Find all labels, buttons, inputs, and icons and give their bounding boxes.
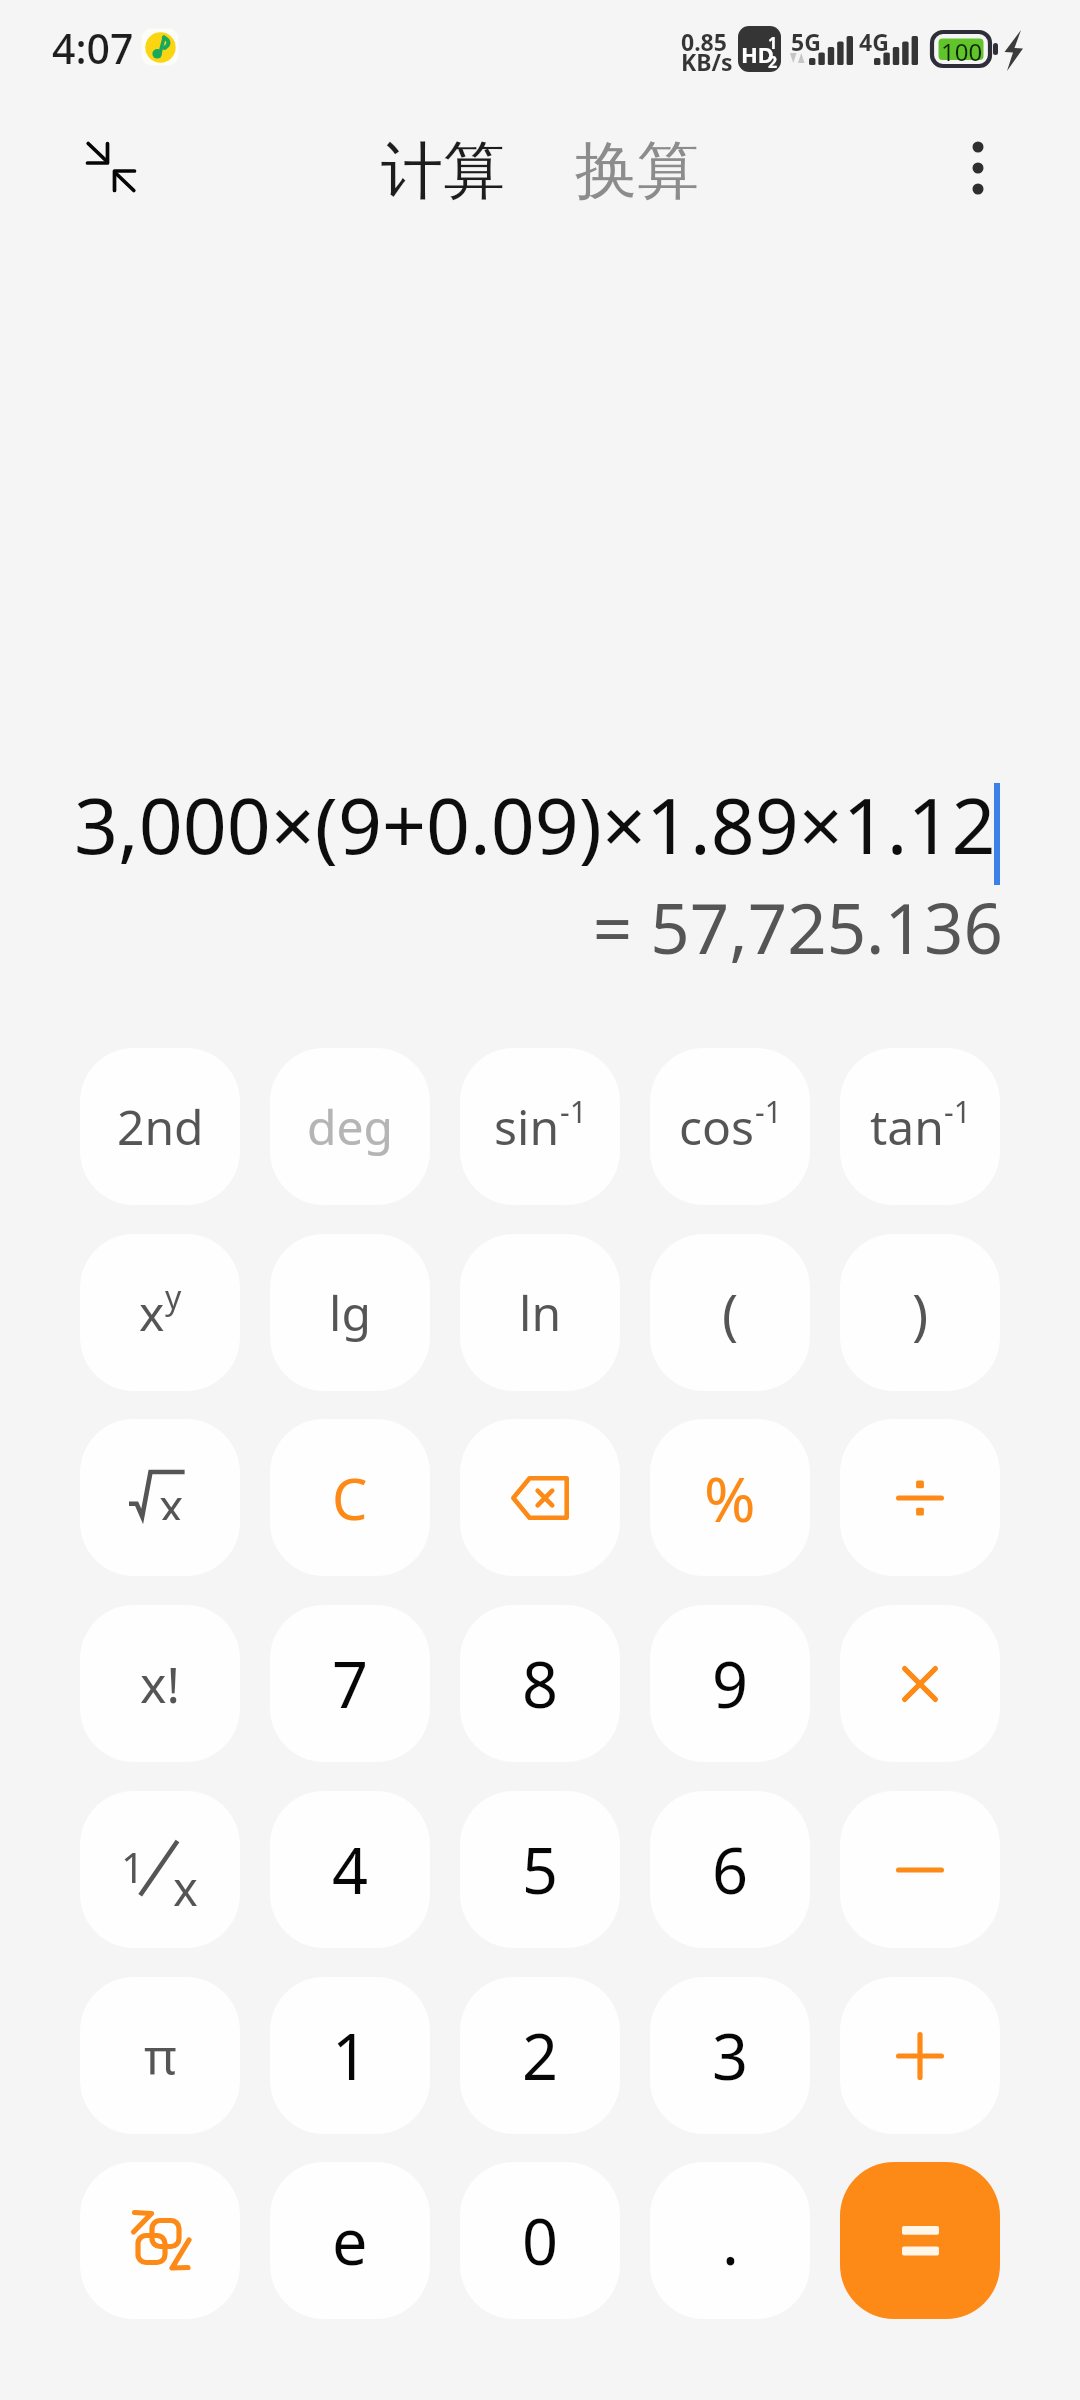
button[interactable]: x to the power y bbox=[80, 1234, 240, 1391]
button[interactable]: e bbox=[270, 2162, 430, 2319]
button[interactable]: 0 bbox=[460, 2162, 620, 2319]
staticText: C bbox=[332, 1460, 368, 1536]
staticText: 0 bbox=[522, 2198, 559, 2284]
button[interactable]: 3 bbox=[650, 1977, 810, 2134]
button[interactable]: 2nd bbox=[80, 1048, 240, 1205]
staticText: 100 bbox=[941, 35, 983, 68]
staticText: 计算 bbox=[381, 132, 505, 210]
staticText: 4:07 bbox=[52, 20, 134, 76]
button[interactable]: π bbox=[80, 1977, 240, 2134]
staticText: 换算 bbox=[575, 132, 699, 210]
staticText: 4G bbox=[859, 26, 889, 57]
button[interactable]: lg bbox=[270, 1234, 430, 1391]
staticText: 3,000×(9+0.09)×1.89×1.12 bbox=[74, 772, 996, 877]
staticText: . bbox=[722, 2198, 739, 2284]
button[interactable]: 计算 bbox=[371, 114, 515, 228]
button[interactable]: Plus bbox=[840, 1977, 1000, 2134]
staticText: 9 bbox=[712, 1641, 749, 1727]
staticText: sin bbox=[494, 1094, 560, 1159]
staticText: ( bbox=[722, 1276, 739, 1350]
staticText: x bbox=[139, 1280, 165, 1345]
button[interactable]: Equals bbox=[840, 2162, 1000, 2319]
staticText: 7 bbox=[332, 1641, 369, 1727]
staticText: 1 bbox=[332, 2013, 369, 2099]
staticText: -1 bbox=[560, 1091, 587, 1132]
button[interactable]: 6 bbox=[650, 1791, 810, 1948]
button[interactable]: Divide bbox=[840, 1419, 1000, 1576]
button[interactable]: 4 bbox=[270, 1791, 430, 1948]
staticText: lg bbox=[329, 1280, 371, 1345]
staticText: = 57,725.136 bbox=[0, 880, 1003, 974]
staticText: 2nd bbox=[117, 1094, 204, 1159]
button[interactable]: arc cosine bbox=[650, 1048, 810, 1205]
staticText: ln bbox=[519, 1280, 562, 1345]
button[interactable]: Reciprocal bbox=[80, 1791, 240, 1948]
button[interactable]: deg bbox=[270, 1048, 430, 1205]
staticText: 6 bbox=[712, 1827, 749, 1913]
button[interactable]: 7 bbox=[270, 1605, 430, 1762]
staticText: KB/s bbox=[681, 46, 733, 77]
staticText: cos bbox=[679, 1094, 755, 1159]
staticText: 5 bbox=[522, 1827, 559, 1913]
button[interactable]: 换算 bbox=[565, 114, 709, 228]
staticText: HD bbox=[741, 39, 774, 69]
staticText: tan bbox=[870, 1094, 944, 1159]
staticText: 8 bbox=[522, 1641, 559, 1727]
button[interactable]: 9 bbox=[650, 1605, 810, 1762]
button[interactable]: x! bbox=[80, 1605, 240, 1762]
staticText: 2 bbox=[768, 51, 778, 73]
staticText: % bbox=[704, 1456, 756, 1540]
button[interactable]: . bbox=[650, 2162, 810, 2319]
button[interactable]: 1 bbox=[270, 1977, 430, 2134]
button[interactable]: C bbox=[270, 1419, 430, 1576]
button[interactable]: % bbox=[650, 1419, 810, 1576]
button[interactable]: ) bbox=[840, 1234, 1000, 1391]
button[interactable]: 2 bbox=[460, 1977, 620, 2134]
button[interactable]: Backspace bbox=[460, 1419, 620, 1576]
button[interactable]: Switch keypad bbox=[80, 2162, 240, 2319]
staticText: deg bbox=[307, 1094, 394, 1159]
staticText: -1 bbox=[944, 1091, 971, 1132]
button[interactable]: arc tangent bbox=[840, 1048, 1000, 1205]
button[interactable]: ln bbox=[460, 1234, 620, 1391]
staticText: x! bbox=[140, 1650, 180, 1718]
button[interactable]: Collapse bbox=[68, 124, 156, 212]
button[interactable]: More options bbox=[936, 126, 1020, 210]
button[interactable]: Minus bbox=[840, 1791, 1000, 1948]
staticText: 5G bbox=[791, 26, 821, 57]
staticText: 2 bbox=[522, 2013, 559, 2099]
button[interactable]: Multiply bbox=[840, 1605, 1000, 1762]
staticText: y bbox=[165, 1275, 182, 1319]
button[interactable]: ( bbox=[650, 1234, 810, 1391]
staticText: 3 bbox=[712, 2013, 749, 2099]
staticText: ) bbox=[912, 1276, 929, 1350]
button[interactable]: 5 bbox=[460, 1791, 620, 1948]
staticText: -1 bbox=[755, 1091, 782, 1132]
staticText: e bbox=[332, 2198, 368, 2284]
button[interactable]: Square root bbox=[80, 1419, 240, 1576]
staticText: 1 bbox=[768, 32, 778, 54]
staticText: x bbox=[173, 1856, 198, 1914]
staticText: x bbox=[159, 1474, 184, 1520]
button[interactable]: arc sine bbox=[460, 1048, 620, 1205]
staticText: π bbox=[144, 2022, 177, 2090]
button[interactable]: 8 bbox=[460, 1605, 620, 1762]
staticText: 4 bbox=[332, 1827, 369, 1913]
staticText: 1 bbox=[121, 1839, 145, 1895]
staticText: 0.85 bbox=[681, 26, 727, 57]
